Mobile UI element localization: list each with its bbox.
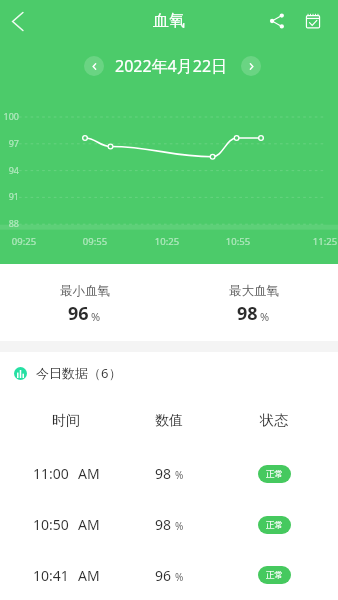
staticText: 98 (155, 515, 172, 534)
staticText: AM (78, 515, 100, 534)
staticText: 数值 (155, 412, 183, 430)
button[interactable]: 10:41 (0, 550, 338, 600)
staticText: 100 (0, 110, 19, 122)
staticText: 正常 (266, 469, 283, 480)
staticText: AM (78, 464, 100, 483)
button[interactable]: Calendar (295, 3, 331, 39)
staticText: AM (78, 566, 100, 585)
staticText: 09:25 (2, 235, 46, 248)
staticText: 94 (0, 164, 19, 176)
staticText: 最大血氧 (229, 283, 279, 299)
button[interactable]: 10:50 (0, 499, 338, 550)
staticText: 11:00 (33, 464, 69, 483)
staticText: % (260, 309, 270, 324)
staticText: 98 (155, 464, 172, 483)
staticText: 96 (68, 301, 89, 326)
staticText: 今日数据（6） (36, 364, 122, 382)
staticText: 血氧 (153, 11, 185, 31)
button[interactable]: Back (0, 3, 36, 39)
staticText: 状态 (260, 412, 288, 430)
staticText: 2022年4月22日 (115, 55, 228, 77)
staticText: 10:25 (145, 235, 189, 248)
button[interactable]: Next day (241, 56, 261, 76)
staticText: 98 (237, 301, 258, 326)
staticText: 10:50 (33, 515, 69, 534)
button[interactable]: 11:00 (0, 448, 338, 499)
staticText: 10:41 (33, 566, 69, 585)
staticText: 88 (0, 217, 19, 229)
staticText: 91 (0, 190, 19, 202)
staticText: 10:55 (216, 235, 260, 248)
staticText: % (91, 309, 101, 324)
staticText: 正常 (266, 570, 283, 581)
staticText: % (175, 468, 184, 482)
staticText: 最小血氧 (60, 283, 110, 299)
staticText: % (175, 570, 184, 584)
staticText: 97 (0, 137, 19, 149)
staticText: 96 (155, 566, 172, 585)
staticText: 正常 (266, 520, 283, 531)
button[interactable]: Previous day (84, 56, 104, 76)
staticText: % (175, 519, 184, 533)
staticText: 09:55 (73, 235, 117, 248)
button[interactable]: Share (259, 3, 295, 39)
staticText: 11:25 (303, 235, 338, 248)
staticText: 时间 (52, 412, 80, 430)
